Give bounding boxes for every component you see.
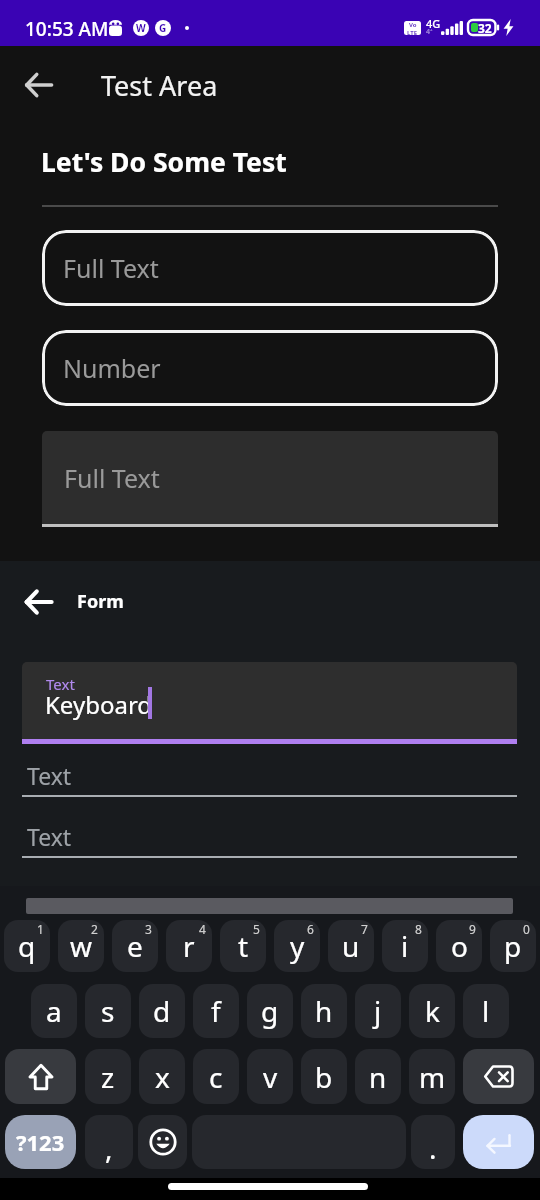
staticText: x [155,1058,170,1096]
button[interactable]: b [301,1049,347,1104]
staticText: g [261,992,279,1030]
staticText: Full Text [63,251,159,285]
button[interactable]: Text [22,821,517,858]
button[interactable]: i [382,920,428,972]
staticText: 6 [307,921,314,937]
staticText: , [105,1129,113,1167]
staticText: z [101,1058,115,1096]
staticText: d [153,992,171,1030]
button[interactable]: Back [11,574,67,630]
button[interactable]: Enter [463,1115,534,1169]
button[interactable]: z [85,1049,131,1104]
staticText: 0 [523,921,530,937]
button[interactable]: m [409,1049,455,1104]
button[interactable]: Shift [5,1049,76,1104]
button[interactable]: k [409,984,455,1038]
staticText: 1 [37,921,44,937]
button[interactable]: a [31,984,77,1038]
staticText: s [101,992,115,1030]
staticText: . [429,1129,437,1167]
staticText: 2 [91,921,98,937]
staticText: G [159,21,167,35]
staticText: Form [77,589,124,614]
button[interactable]: e [112,920,158,972]
button[interactable]: h [301,984,347,1038]
staticText: ?123 [16,1127,65,1157]
button[interactable]: Text [22,760,517,797]
staticText: w [70,927,93,965]
staticText: r [183,927,195,965]
button[interactable]: n [355,1049,401,1104]
staticText: p [504,927,522,965]
button[interactable]: w [58,920,104,972]
staticText: Text [27,821,72,852]
button[interactable]: Backspace [463,1049,534,1104]
button[interactable]: d [139,984,185,1038]
button[interactable]: g [247,984,293,1038]
staticText: Text [46,674,75,694]
button[interactable]: Number [42,330,498,406]
staticText: t [238,927,249,965]
staticText: 3 [145,921,152,937]
staticText: j [374,992,382,1030]
staticText: q [18,927,36,965]
staticText: l [482,992,490,1030]
staticText: 4G [426,16,441,31]
staticText: f [211,992,221,1030]
staticText: W [136,21,146,35]
staticText: 10:53 AM [25,16,109,42]
staticText: y [290,927,305,965]
button[interactable]: . [411,1115,455,1169]
staticText: 4⁺ [426,27,433,37]
staticText: 5 [253,921,260,937]
button[interactable]: j [355,984,401,1038]
staticText: n [369,1058,387,1096]
button[interactable]: r [166,920,212,972]
button[interactable]: q [4,920,50,972]
staticText: 4 [199,921,206,937]
staticText: i [401,927,409,965]
button[interactable]: Full Text [42,230,498,306]
button[interactable]: c [193,1049,239,1104]
staticText: 9 [469,921,476,937]
staticText: Number [63,351,161,385]
staticText: Text [27,760,72,791]
staticText: 8 [415,921,422,937]
staticText: u [342,927,360,965]
staticText: m [419,1058,446,1096]
button[interactable]: l [463,984,509,1038]
button[interactable]: Text [22,662,517,739]
button[interactable]: s [85,984,131,1038]
staticText: a [46,992,62,1030]
button[interactable]: f [193,984,239,1038]
staticText: LTE [407,29,418,35]
button[interactable]: v [247,1049,293,1104]
button[interactable]: p [490,920,536,972]
button[interactable]: x [139,1049,185,1104]
button[interactable]: Back [11,57,67,113]
staticText: h [315,992,333,1030]
staticText: 32 [478,20,492,36]
staticText: Let's Do Some Test [41,144,287,180]
staticText: c [209,1058,223,1096]
staticText: Test Area [101,67,218,104]
staticText: e [127,927,143,965]
staticText: o [451,927,468,965]
button[interactable]: u [328,920,374,972]
staticText: b [315,1058,333,1096]
staticText: k [425,992,440,1030]
staticText: Vo [409,21,417,29]
button[interactable]: , [85,1115,133,1169]
button[interactable]: y [274,920,320,972]
button[interactable]: ?123 [5,1115,76,1169]
staticText: Keyboard [45,688,153,721]
button[interactable]: t [220,920,266,972]
staticText: 7 [361,921,368,937]
button[interactable]: o [436,920,482,972]
button[interactable]: Emoji [138,1115,187,1169]
button[interactable]: Full Text [42,431,498,524]
staticText: Full Text [64,461,160,495]
staticText: v [263,1058,278,1096]
